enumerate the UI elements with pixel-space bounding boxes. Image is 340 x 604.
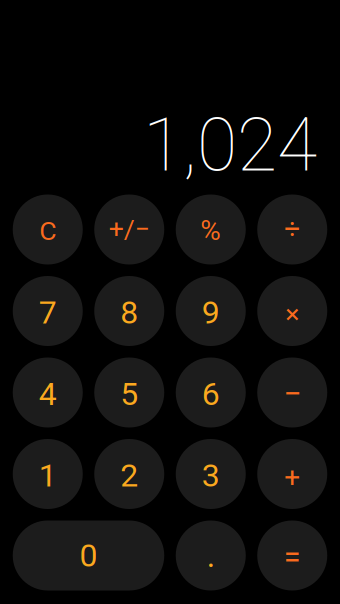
button[interactable]: 4 — [13, 357, 83, 427]
staticText: × — [285, 298, 299, 330]
staticText: . — [207, 537, 215, 575]
staticText: = — [284, 539, 301, 575]
button[interactable]: 0 — [13, 520, 164, 590]
staticText: ÷ — [284, 212, 300, 245]
staticText: 1 — [39, 457, 57, 494]
button[interactable]: 6 — [176, 357, 246, 427]
staticText: 3 — [202, 457, 220, 494]
button[interactable]: +/− — [94, 194, 164, 264]
button[interactable]: 5 — [94, 357, 164, 427]
button[interactable]: . — [176, 520, 246, 590]
button[interactable]: = — [257, 520, 327, 590]
staticText: 8 — [120, 294, 138, 331]
staticText: C — [39, 215, 56, 247]
button[interactable]: × — [257, 276, 327, 346]
staticText: 5 — [120, 375, 138, 413]
button[interactable]: 3 — [176, 439, 246, 509]
staticText: + — [284, 461, 300, 493]
button[interactable]: + — [257, 439, 327, 509]
button[interactable]: 8 — [94, 276, 164, 346]
staticText: − — [283, 375, 301, 412]
staticText: 9 — [202, 294, 220, 331]
button[interactable]: ÷ — [257, 194, 327, 264]
staticText: 6 — [202, 375, 220, 413]
button[interactable]: C — [13, 194, 83, 264]
staticText: 1,024 — [143, 103, 317, 188]
button[interactable]: % — [176, 194, 246, 264]
staticText: % — [200, 214, 221, 247]
staticText: 0 — [79, 537, 97, 574]
staticText: 4 — [39, 375, 57, 413]
button[interactable]: 9 — [176, 276, 246, 346]
button[interactable]: 1 — [13, 439, 83, 509]
button[interactable]: 7 — [13, 276, 83, 346]
staticText: +/− — [109, 213, 150, 245]
staticText: 7 — [39, 294, 57, 331]
button[interactable]: − — [257, 357, 327, 427]
staticText: 2 — [120, 457, 138, 494]
button[interactable]: 2 — [94, 439, 164, 509]
